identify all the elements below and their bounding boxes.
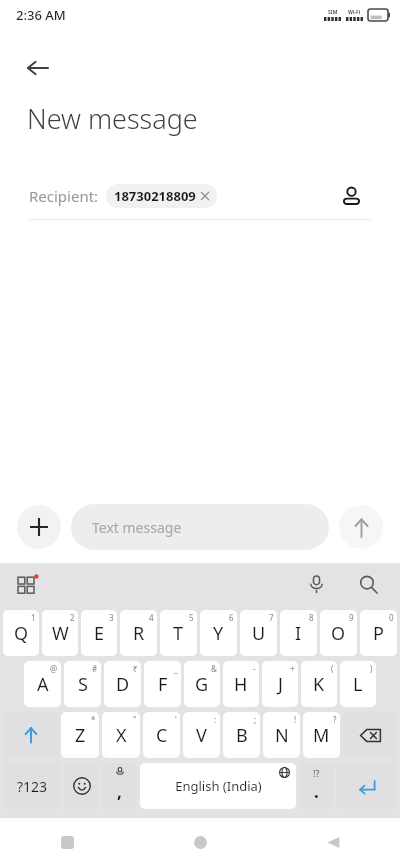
button[interactable]: Toolbar menu — [10, 566, 46, 602]
staticText: N — [275, 723, 289, 748]
staticText: H — [234, 672, 248, 697]
staticText: Y — [213, 621, 224, 646]
button[interactable]: Back — [14, 44, 62, 92]
staticText: 2:36 AM — [16, 6, 66, 24]
button[interactable]: M — [303, 712, 340, 758]
staticText: 0 — [389, 612, 394, 623]
button[interactable]: O — [320, 610, 357, 656]
button[interactable]: N — [263, 712, 300, 758]
button[interactable]: H — [223, 661, 259, 707]
staticText: M — [313, 723, 330, 748]
button[interactable]: Home — [134, 818, 267, 866]
button[interactable]: Text message — [71, 504, 329, 550]
staticText: ₹ — [133, 663, 138, 674]
staticText: @ — [50, 663, 58, 674]
staticText: * — [91, 714, 96, 725]
staticText: B — [236, 723, 248, 748]
staticText: S — [78, 672, 88, 697]
button[interactable]: A — [24, 661, 61, 707]
staticText: New message — [27, 100, 198, 137]
button[interactable]: Backspace — [343, 712, 397, 758]
button[interactable]: J — [262, 661, 298, 707]
staticText: Wi-Fi — [348, 9, 361, 16]
button[interactable]: Recents — [0, 818, 134, 866]
staticText: ( — [331, 663, 334, 674]
button[interactable]: Period — [299, 763, 334, 809]
staticText: I — [295, 621, 302, 646]
button[interactable]: F — [144, 661, 181, 707]
staticText: !? — [313, 767, 320, 779]
staticText: ) — [370, 663, 373, 674]
button[interactable]: Y — [200, 610, 237, 656]
button[interactable]: D — [104, 661, 141, 707]
button[interactable]: P — [360, 610, 397, 656]
button[interactable]: X — [102, 712, 140, 758]
button[interactable]: S — [64, 661, 101, 707]
button[interactable]: T — [160, 610, 197, 656]
staticText: & — [211, 663, 217, 674]
staticText: Recipient: — [29, 186, 99, 206]
button[interactable]: I — [280, 610, 317, 656]
staticText: E — [94, 621, 105, 646]
staticText: O — [331, 621, 346, 646]
staticText: A — [37, 672, 49, 697]
staticText: F — [158, 672, 168, 697]
button[interactable]: R — [120, 610, 157, 656]
button[interactable]: E — [81, 610, 117, 656]
button[interactable]: Search — [350, 566, 386, 602]
staticText: L — [353, 672, 363, 697]
button[interactable]: Voice input — [298, 566, 334, 602]
button[interactable]: K — [301, 661, 337, 707]
staticText: SIM — [328, 9, 338, 16]
staticText: ? — [333, 714, 337, 725]
staticText: _ — [174, 663, 178, 674]
staticText: ?123 — [17, 777, 48, 796]
button[interactable]: Send — [339, 505, 383, 549]
staticText: ' — [175, 714, 177, 725]
staticText: P — [373, 621, 384, 646]
staticText: ! — [294, 714, 297, 725]
staticText: V — [196, 723, 207, 748]
staticText: U — [252, 621, 266, 646]
staticText: K — [313, 672, 325, 697]
button[interactable]: W — [42, 610, 78, 656]
button[interactable]: L — [340, 661, 376, 707]
button[interactable]: 18730218809 — [106, 184, 217, 208]
button[interactable]: Q — [3, 610, 39, 656]
button[interactable]: V — [183, 712, 220, 758]
staticText: Text message — [92, 518, 182, 537]
staticText: - — [253, 663, 256, 674]
button[interactable]: G — [184, 661, 220, 707]
staticText: D — [116, 672, 130, 697]
button[interactable]: Add attachment — [17, 505, 61, 549]
staticText: 7 — [269, 612, 274, 623]
staticText: 1 — [31, 612, 36, 623]
staticText: T — [173, 621, 184, 646]
button[interactable]: C — [143, 712, 180, 758]
staticText: W — [52, 621, 69, 646]
button[interactable]: Enter — [337, 763, 397, 809]
button[interactable]: Choose contact — [331, 179, 371, 213]
staticText: # — [92, 663, 98, 674]
staticText: 18730218809 — [114, 187, 196, 205]
staticText: G — [195, 672, 209, 697]
button[interactable]: Shift — [3, 712, 58, 758]
button[interactable]: English (India) — [140, 763, 296, 809]
button[interactable]: ?123 — [3, 763, 61, 809]
button[interactable]: Emoji — [64, 763, 99, 809]
staticText: + — [290, 663, 295, 674]
staticText: Q — [14, 621, 29, 646]
staticText: R — [133, 621, 145, 646]
staticText: 5 — [189, 612, 194, 623]
staticText: 3 — [109, 612, 114, 623]
button[interactable]: Back — [267, 818, 400, 866]
staticText: 2 — [70, 612, 75, 623]
button[interactable]: B — [223, 712, 260, 758]
staticText: English (India) — [175, 777, 262, 795]
button[interactable]: Comma, voice — [102, 763, 137, 809]
staticText: 4 — [149, 612, 154, 623]
button[interactable]: Z — [61, 712, 99, 758]
staticText: 8 — [309, 612, 314, 623]
staticText: " — [133, 714, 137, 725]
button[interactable]: U — [240, 610, 277, 656]
